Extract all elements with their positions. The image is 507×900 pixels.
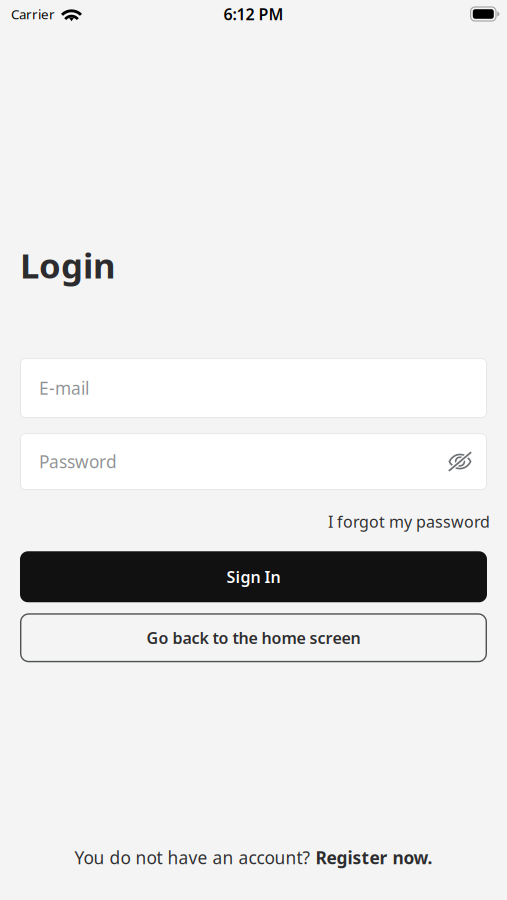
staticText: You do not have an account? bbox=[74, 846, 315, 869]
button[interactable]: Show password bbox=[448, 452, 472, 471]
button[interactable]: Sign In bbox=[20, 551, 487, 602]
staticText: Sign In bbox=[226, 566, 280, 587]
button[interactable]: I forgot my password bbox=[328, 511, 490, 532]
staticText: 6:12 PM bbox=[223, 3, 283, 25]
staticText: Login bbox=[20, 242, 116, 288]
button[interactable]: E-mail bbox=[20, 358, 487, 418]
button[interactable]: Go back to the home screen bbox=[20, 613, 487, 662]
staticText: Go back to the home screen bbox=[146, 627, 360, 648]
button[interactable]: Password bbox=[39, 433, 448, 490]
staticText: E-mail bbox=[39, 376, 89, 399]
staticText: Register now. bbox=[315, 846, 432, 869]
staticText: Password bbox=[39, 450, 117, 473]
staticText: Carrier bbox=[11, 5, 55, 23]
staticText: I forgot my password bbox=[328, 511, 490, 532]
button[interactable]: Register now. bbox=[315, 846, 432, 869]
